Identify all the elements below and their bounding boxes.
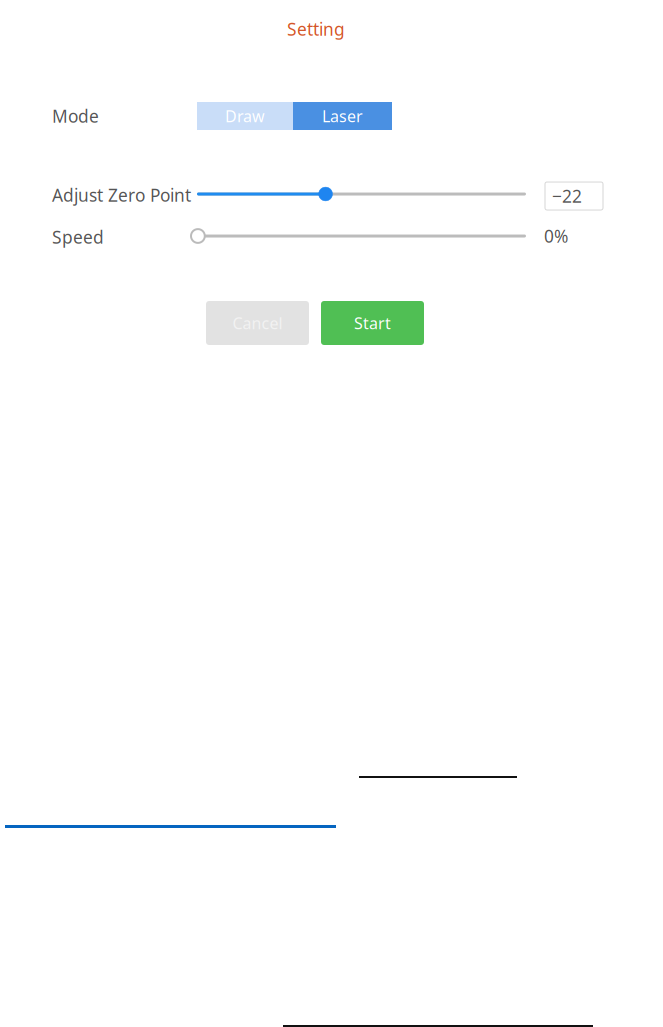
button[interactable]: Draw [197,102,293,130]
button[interactable]: Speed slider [191,228,526,244]
button[interactable]: Start [321,301,424,345]
button[interactable]: Laser [293,102,392,130]
button[interactable]: −22 [545,182,603,210]
staticText: 0% [544,224,568,247]
staticText: Speed [52,225,104,248]
staticText: Setting [287,17,345,40]
staticText: −22 [552,184,582,207]
staticText: Start [354,312,391,334]
button[interactable]: Adjust Zero Point slider [197,186,526,202]
staticText: Cancel [232,312,282,334]
staticText: Adjust Zero Point [52,183,191,206]
staticText: Draw [225,105,265,127]
staticText: Laser [322,105,363,127]
staticText: Mode [52,104,99,127]
